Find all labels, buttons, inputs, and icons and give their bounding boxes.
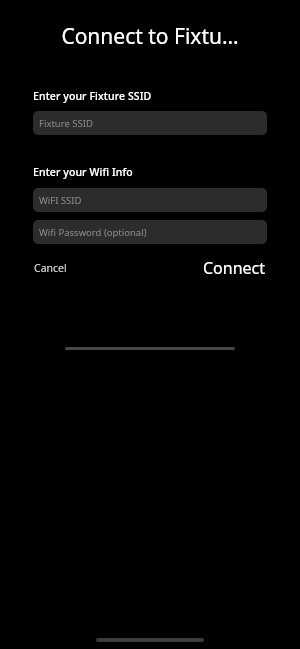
button[interactable]: Wifi Password (optional) <box>33 220 267 244</box>
staticText: Enter your Fixture SSID <box>33 89 152 103</box>
button[interactable]: Fixture SSID <box>33 111 267 135</box>
button[interactable]: Cancel <box>33 257 68 279</box>
staticText: Connect to Fixtu… <box>61 22 239 51</box>
button[interactable]: Connect <box>202 255 267 281</box>
staticText: Enter your Wifi Info <box>33 165 133 179</box>
other: Home gesture handle <box>96 638 204 642</box>
staticText: Connect <box>203 257 266 279</box>
staticText: Cancel <box>34 261 67 275</box>
staticText: WiFI SSID <box>39 194 82 207</box>
staticText: Fixture SSID <box>39 117 93 130</box>
staticText: Wifi Password (optional) <box>39 226 147 239</box>
button[interactable]: WiFI SSID <box>33 188 267 212</box>
